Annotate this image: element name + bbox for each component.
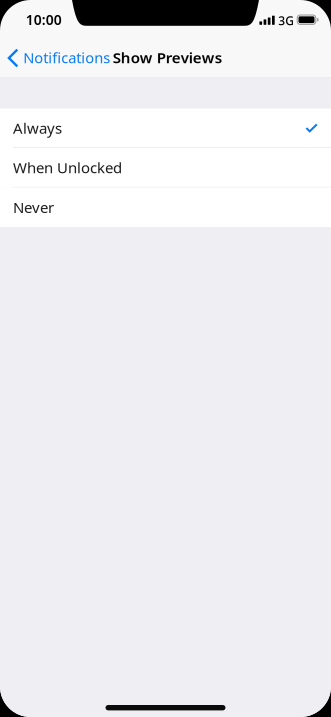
staticText: Show Previews	[113, 47, 222, 68]
button[interactable]: Never	[0, 187, 331, 227]
staticText: When Unlocked	[13, 157, 122, 178]
staticText: 10:00	[26, 10, 62, 29]
staticText: Always	[13, 118, 62, 138]
staticText: Notifications	[23, 47, 110, 67]
button[interactable]: Notifications	[0, 36, 110, 80]
button[interactable]: Always	[0, 108, 331, 148]
staticText: Never	[13, 197, 54, 217]
button[interactable]: When Unlocked	[0, 148, 331, 187]
staticText: 3G	[278, 12, 294, 29]
